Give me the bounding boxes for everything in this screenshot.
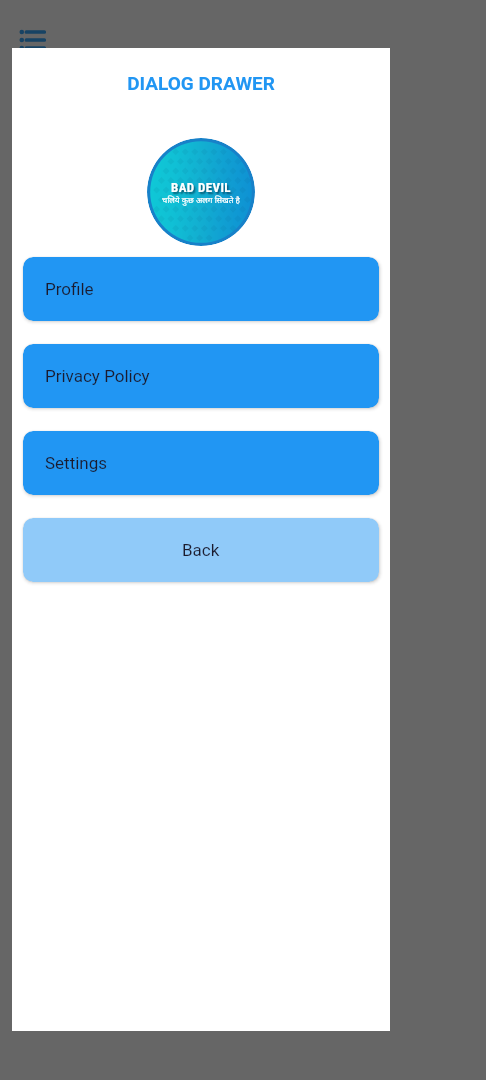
staticText: BAD DEVIL bbox=[171, 180, 231, 195]
button[interactable]: Back bbox=[23, 518, 379, 582]
button[interactable]: Privacy Policy bbox=[23, 344, 379, 408]
staticText: Settings bbox=[45, 453, 108, 473]
staticText: DIALOG DRAWER bbox=[12, 72, 390, 94]
staticText: Profile bbox=[45, 279, 94, 299]
staticText: चलिये कुछ अलग सिखते है bbox=[162, 196, 240, 207]
staticText: Back bbox=[182, 540, 220, 560]
staticText: Privacy Policy bbox=[45, 366, 150, 386]
button[interactable]: Settings bbox=[23, 431, 379, 495]
button[interactable]: Open navigation drawer bbox=[12, 20, 52, 60]
button[interactable]: Profile bbox=[23, 257, 379, 321]
